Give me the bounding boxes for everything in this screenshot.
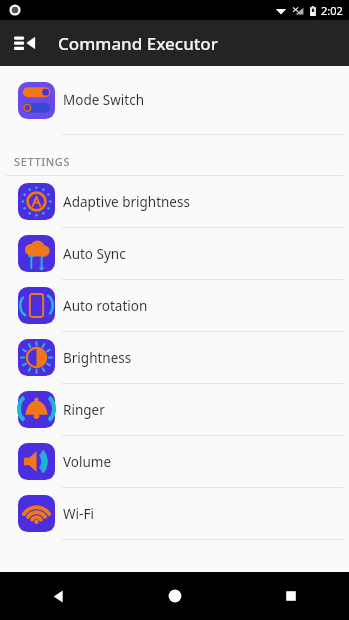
button[interactable]: Recent apps (233, 572, 349, 620)
button[interactable]: Auto rotation (0, 280, 349, 332)
button[interactable]: Ringer (0, 384, 349, 436)
staticText: Volume (63, 453, 112, 471)
staticText: Auto Sync (63, 245, 126, 263)
staticText: Brightness (63, 349, 132, 367)
button[interactable]: Volume (0, 436, 349, 488)
staticText: Auto rotation (63, 297, 148, 315)
staticText: Mode Switch (63, 91, 145, 109)
button[interactable]: Auto Sync (0, 228, 349, 280)
staticText: Ringer (63, 401, 105, 419)
button[interactable]: Wi-Fi (0, 488, 349, 540)
staticText: Adaptive brightness (63, 193, 190, 211)
button[interactable]: Adaptive brightness (0, 176, 349, 228)
button[interactable]: Back (0, 572, 117, 620)
staticText: SETTINGS (14, 154, 71, 169)
button[interactable]: Navigate up (8, 26, 42, 60)
staticText: 2:02 (321, 3, 343, 18)
button[interactable]: Mode Switch (0, 66, 349, 135)
button[interactable]: Home (117, 572, 233, 620)
staticText: Wi-Fi (63, 505, 94, 523)
button[interactable]: Brightness (0, 332, 349, 384)
staticText: Command Executor (58, 32, 218, 55)
